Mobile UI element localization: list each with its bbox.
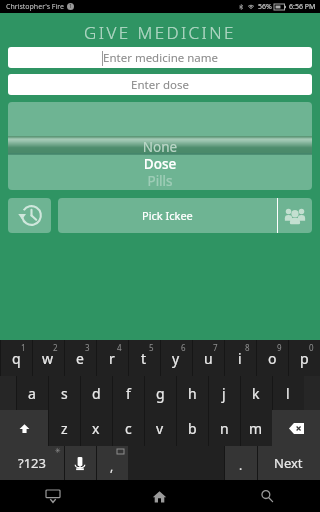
staticText: i <box>238 349 242 368</box>
button[interactable]: f <box>112 376 144 410</box>
staticText: 6:56 PM <box>289 2 316 12</box>
button[interactable]: Next <box>257 446 320 480</box>
staticText: 0 <box>309 342 314 353</box>
staticText: f <box>126 384 131 403</box>
button[interactable]: History <box>8 198 51 233</box>
staticText: 56% <box>258 2 272 12</box>
staticText: c <box>125 419 132 438</box>
staticText: w <box>42 349 54 368</box>
staticText: k <box>252 384 260 403</box>
staticText: GIVE MEDICINE <box>0 21 320 44</box>
staticText: z <box>61 419 68 438</box>
button[interactable]: c <box>112 410 144 446</box>
staticText: x <box>92 419 100 438</box>
staticText: Pick Ickee <box>142 208 193 223</box>
button[interactable]: p <box>288 340 320 376</box>
staticText: b <box>188 419 197 438</box>
staticText: 6 <box>181 342 186 353</box>
button[interactable]: x <box>80 410 112 446</box>
staticText: ✳ <box>55 447 61 455</box>
staticText: l <box>286 384 290 403</box>
staticText: 1 <box>21 342 26 353</box>
button[interactable]: j <box>208 376 240 410</box>
staticText: g <box>156 384 165 403</box>
staticText: 7 <box>213 342 218 353</box>
button[interactable]: s <box>48 376 80 410</box>
staticText: Next <box>274 454 303 472</box>
staticText: y <box>172 349 180 368</box>
staticText: o <box>268 349 277 368</box>
staticText: 1 <box>69 3 72 10</box>
staticText: Pills <box>8 172 312 190</box>
staticText: n <box>220 419 229 438</box>
staticText: . <box>239 457 243 473</box>
staticText: Enter dose <box>131 77 189 93</box>
staticText: 3 <box>85 342 90 353</box>
button[interactable]: e <box>64 340 96 376</box>
button[interactable]: y <box>160 340 192 376</box>
button[interactable]: r <box>96 340 128 376</box>
button[interactable]: Home <box>106 480 213 512</box>
button[interactable]: w <box>32 340 64 376</box>
staticText: e <box>76 349 84 368</box>
staticText: s <box>61 384 68 403</box>
button[interactable]: Search <box>213 480 320 512</box>
button[interactable]: l <box>272 376 304 410</box>
staticText: None <box>8 138 312 156</box>
button[interactable]: q <box>0 340 32 376</box>
staticText: 9 <box>277 342 282 353</box>
staticText: , <box>110 458 114 474</box>
button[interactable]: , <box>96 446 128 480</box>
staticText: v <box>156 419 164 438</box>
button[interactable]: a <box>16 376 48 410</box>
staticText: Christopher's Fire <box>6 2 64 12</box>
staticText: u <box>204 349 213 368</box>
staticText: Enter medicine name <box>103 50 219 66</box>
button[interactable]: h <box>176 376 208 410</box>
staticText: 5 <box>149 342 154 353</box>
button[interactable]: n <box>208 410 240 446</box>
button[interactable]: ?123 <box>0 446 64 480</box>
button[interactable]: Enter dose <box>8 74 312 95</box>
staticText: 2 <box>53 342 58 353</box>
button[interactable]: t <box>128 340 160 376</box>
button[interactable]: d <box>80 376 112 410</box>
button[interactable]: None <box>8 102 312 190</box>
button[interactable]: Enter medicine name <box>8 47 312 68</box>
button[interactable]: Pick Ickee <box>58 198 312 233</box>
staticText: m <box>249 419 263 438</box>
staticText: a <box>28 384 36 403</box>
button[interactable]: v <box>144 410 176 446</box>
staticText: Dose <box>8 155 312 173</box>
button[interactable]: o <box>256 340 288 376</box>
staticText: 4 <box>117 342 122 353</box>
staticText: ?123 <box>18 454 46 472</box>
staticText: t <box>141 349 147 368</box>
button[interactable]: z <box>48 410 80 446</box>
button[interactable]: k <box>240 376 272 410</box>
staticText: j <box>222 384 226 403</box>
button[interactable]: g <box>144 376 176 410</box>
staticText: d <box>92 384 101 403</box>
button[interactable]: Voice input <box>64 446 96 480</box>
button[interactable]: Hide keyboard <box>0 480 106 512</box>
button[interactable]: i <box>224 340 256 376</box>
button[interactable]: . <box>224 446 257 480</box>
button[interactable]: Backspace <box>272 410 320 446</box>
button[interactable]: u <box>192 340 224 376</box>
staticText: h <box>188 384 197 403</box>
button[interactable]: Shift <box>0 410 48 446</box>
staticText: 8 <box>245 342 250 353</box>
button[interactable]: b <box>176 410 208 446</box>
staticText: r <box>109 349 115 368</box>
staticText: p <box>300 349 309 368</box>
staticText: q <box>12 349 21 368</box>
button[interactable]: m <box>240 410 272 446</box>
